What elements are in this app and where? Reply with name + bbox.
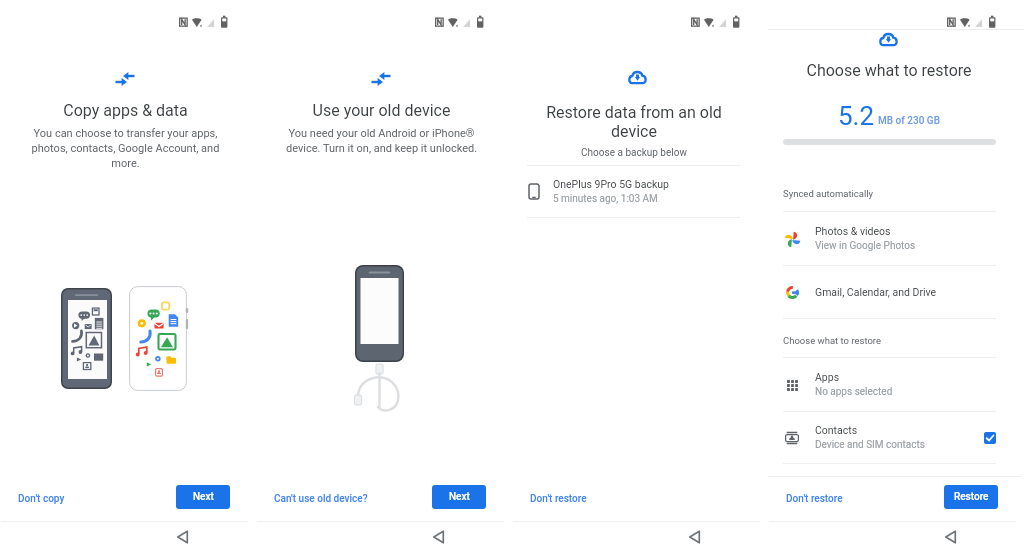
staticText: Gmail, Calendar, and Drive	[815, 286, 937, 298]
staticText: Device and SIM contacts	[815, 439, 925, 451]
staticText: MB of 230 GB	[878, 115, 940, 127]
staticText: View in Google Photos	[815, 240, 916, 252]
staticText: Use your old device	[256, 101, 507, 120]
staticText: 5 minutes ago, 1:03 AM	[553, 193, 658, 205]
other: Back	[256, 522, 512, 553]
staticText: No apps selected	[815, 386, 893, 398]
button[interactable]: Don't copy	[0, 486, 72, 512]
other: Back	[512, 522, 768, 553]
button[interactable]: Don't restore	[512, 486, 594, 512]
staticText: Restore data from an old device	[538, 103, 730, 141]
staticText: Copy apps & data	[0, 101, 251, 120]
button[interactable]: Gmail, Calendar, and Drive	[768, 266, 1024, 318]
staticText: Choose what to restore	[783, 335, 882, 346]
button[interactable]: Restore	[944, 485, 998, 509]
button[interactable]: Don't restore	[768, 486, 850, 512]
staticText: Synced automatically	[783, 188, 874, 199]
other: Back	[0, 522, 256, 553]
staticText: Choose a backup below	[512, 147, 756, 159]
button[interactable]: Contacts	[768, 412, 1024, 463]
staticText: 5.2	[838, 101, 875, 131]
button[interactable]: Next	[432, 485, 486, 509]
staticText: Photos & videos	[815, 225, 891, 237]
button[interactable]: OnePlus 9Pro 5G backup	[512, 166, 768, 217]
staticText: Apps	[815, 371, 840, 383]
staticText: You need your old Android or iPhone® dev…	[280, 127, 483, 155]
button[interactable]: Can't use old device?	[256, 486, 375, 512]
staticText: Contacts	[815, 424, 858, 436]
staticText: Restore	[954, 491, 989, 503]
button[interactable]: Photos & videos	[768, 212, 1024, 265]
other: Back	[768, 522, 1024, 553]
button[interactable]: Next	[176, 485, 230, 509]
staticText: Choose what to restore	[768, 61, 1010, 80]
staticText: Next	[193, 491, 214, 503]
staticText: Next	[449, 491, 470, 503]
other: Contacts selected	[984, 432, 996, 444]
button[interactable]: Apps	[768, 358, 1024, 411]
staticText: OnePlus 9Pro 5G backup	[553, 178, 669, 190]
staticText: You can choose to transfer your apps, ph…	[28, 127, 223, 170]
